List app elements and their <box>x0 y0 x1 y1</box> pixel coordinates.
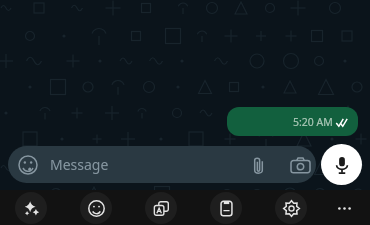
button[interactable]: 5:20 AM <box>227 107 358 136</box>
button[interactable]: Emoji <box>80 192 112 224</box>
button[interactable]: Voice message <box>321 144 362 185</box>
button[interactable]: Clipboard <box>210 192 242 224</box>
button[interactable]: Stickers <box>8 146 316 183</box>
button[interactable]: Stickers <box>15 152 41 178</box>
button[interactable]: Attach <box>244 151 272 179</box>
staticText: Message <box>50 155 109 174</box>
button[interactable]: Translate <box>145 192 177 224</box>
button[interactable]: AI assistant <box>15 192 47 224</box>
button[interactable]: More options <box>328 192 360 224</box>
button[interactable]: Settings <box>275 192 307 224</box>
staticText: 5:20 AM <box>293 115 333 129</box>
button[interactable]: Camera <box>286 151 314 179</box>
